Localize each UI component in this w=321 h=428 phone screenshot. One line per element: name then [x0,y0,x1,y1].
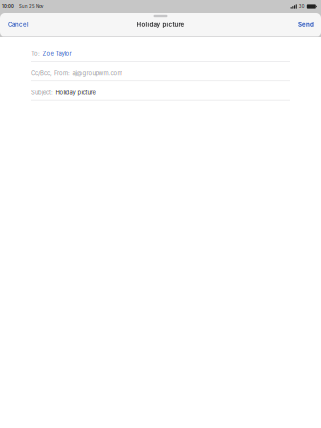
staticText: 10:00 [2,4,14,9]
button[interactable]: Subject: [31,81,290,100]
staticText: Zoe Taylor [42,50,71,57]
staticText: Holiday picture [55,89,95,96]
staticText: Send [298,21,314,28]
staticText: Sun 25 Nov [19,4,43,9]
staticText: Holiday picture [136,21,184,28]
staticText: Cancel [8,21,29,28]
staticText: Subject: [31,89,53,96]
staticText: 30 [299,4,305,9]
staticText: To: [31,50,40,57]
button[interactable]: To: [31,42,290,62]
staticText: Cc/Bcc, From: [31,69,70,77]
button[interactable]: Cc/Bcc, From: [31,62,290,81]
button[interactable]: Cancel [0,17,37,32]
button[interactable]: Send [291,17,321,32]
staticText: aj@groupwm.com [72,69,122,77]
